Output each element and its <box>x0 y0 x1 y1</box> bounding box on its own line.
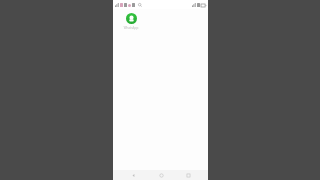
button[interactable]: Recents <box>180 170 196 180</box>
button[interactable]: Back <box>125 170 141 180</box>
button[interactable]: WhatsApp <box>121 13 141 30</box>
button[interactable]: Home <box>153 170 169 180</box>
staticText: WhatsApp <box>121 26 141 30</box>
